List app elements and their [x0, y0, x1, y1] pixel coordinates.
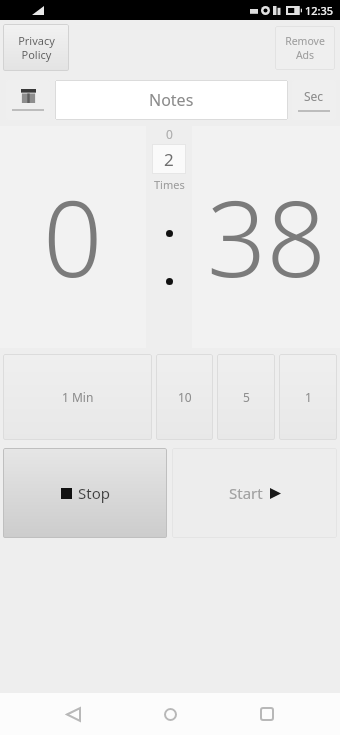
button[interactable]: Recent apps [243, 693, 291, 735]
staticText: 0 [43, 166, 103, 308]
button[interactable]: Back [49, 693, 97, 735]
staticText: Privacy Policy [18, 33, 55, 62]
staticText: 0 [166, 126, 173, 142]
staticText: Stop [78, 483, 110, 503]
button[interactable]: 2 [152, 144, 186, 174]
staticText: 1 [305, 389, 312, 405]
button[interactable]: 0 [0, 126, 146, 348]
button[interactable]: Notes [55, 80, 288, 120]
staticText: Notes [149, 89, 194, 111]
staticText: Start [229, 483, 263, 503]
button[interactable]: Stop [3, 448, 167, 538]
staticText: 5 [243, 389, 250, 405]
button[interactable]: 38 [192, 126, 340, 348]
button[interactable]: Privacy Policy [3, 24, 69, 71]
staticText: 12:35 [305, 3, 334, 18]
button[interactable]: Choose timer [6, 80, 50, 120]
button[interactable]: 1 Min [3, 354, 152, 440]
button[interactable]: 5 [217, 354, 275, 440]
button[interactable]: Home [146, 693, 194, 735]
staticText: Remove Ads [285, 34, 325, 62]
staticText: 1 Min [62, 389, 94, 405]
button[interactable]: Start [172, 448, 337, 538]
staticText: Times [154, 177, 185, 192]
button[interactable]: Remove Ads [275, 26, 335, 70]
staticText: 10 [178, 389, 192, 405]
staticText: 38 [207, 166, 326, 308]
button[interactable]: 1 [279, 354, 337, 440]
button[interactable]: Sec [292, 80, 336, 120]
staticText: Sec [304, 88, 324, 104]
button[interactable]: 10 [156, 354, 213, 440]
staticText: 2 [164, 148, 174, 171]
